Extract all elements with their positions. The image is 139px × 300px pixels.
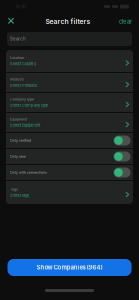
button[interactable]: Equipment bbox=[6, 113, 133, 132]
staticText: Company type bbox=[10, 97, 34, 101]
staticText: Products bbox=[10, 77, 24, 81]
staticText: Select Products bbox=[10, 83, 37, 88]
staticText: Search bbox=[10, 36, 26, 42]
button[interactable]: Close bbox=[0, 15, 17, 27]
staticText: Select tags bbox=[10, 193, 29, 198]
staticText: Only new bbox=[10, 154, 26, 159]
staticText: Search filters bbox=[45, 17, 90, 26]
button[interactable]: Only new bbox=[6, 149, 133, 164]
button[interactable]: Location bbox=[6, 50, 133, 72]
button[interactable]: Show Companies (964) bbox=[7, 259, 131, 276]
staticText: clear bbox=[119, 18, 132, 25]
staticText: Equipment bbox=[10, 117, 27, 121]
staticText: Only verified bbox=[10, 138, 31, 143]
button[interactable]: Tags bbox=[6, 181, 133, 204]
button[interactable]: Company type bbox=[6, 93, 133, 112]
staticText: Tags bbox=[10, 187, 18, 191]
button[interactable]: Only verified bbox=[6, 133, 133, 148]
staticText: Location bbox=[10, 56, 24, 60]
button[interactable]: Search bbox=[7, 32, 132, 46]
staticText: Show Companies (964) bbox=[36, 264, 102, 271]
staticText: Select Company type bbox=[10, 103, 48, 108]
staticText: Select Country bbox=[10, 61, 36, 66]
staticText: Select Equipment bbox=[10, 123, 40, 128]
button[interactable]: clear bbox=[119, 18, 139, 25]
staticText: Only with connections bbox=[10, 170, 47, 175]
button[interactable]: Only with connections bbox=[6, 165, 133, 180]
button[interactable]: Products bbox=[6, 73, 133, 92]
staticText: 9:41 bbox=[16, 3, 26, 10]
